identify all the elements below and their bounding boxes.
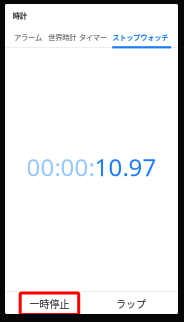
button[interactable]: ストップウォッチ [112,4,177,47]
button[interactable]: 世界時計 [48,4,80,47]
button[interactable]: ラップ [102,293,160,314]
staticText: ラップ [116,296,146,311]
staticText: 10.97 [94,151,156,183]
staticText: 00:00: [26,151,94,183]
staticText: タイマー [79,31,107,42]
button[interactable]: タイマー [79,4,112,47]
staticText: 一時停止 [29,296,69,311]
button[interactable]: 一時停止 [20,293,79,314]
staticText: アラーム [14,31,42,42]
staticText: 世界時計 [48,31,76,42]
button[interactable]: アラーム [14,4,48,47]
staticText: 時計 [13,10,27,21]
staticText: ストップウォッチ [112,31,168,42]
